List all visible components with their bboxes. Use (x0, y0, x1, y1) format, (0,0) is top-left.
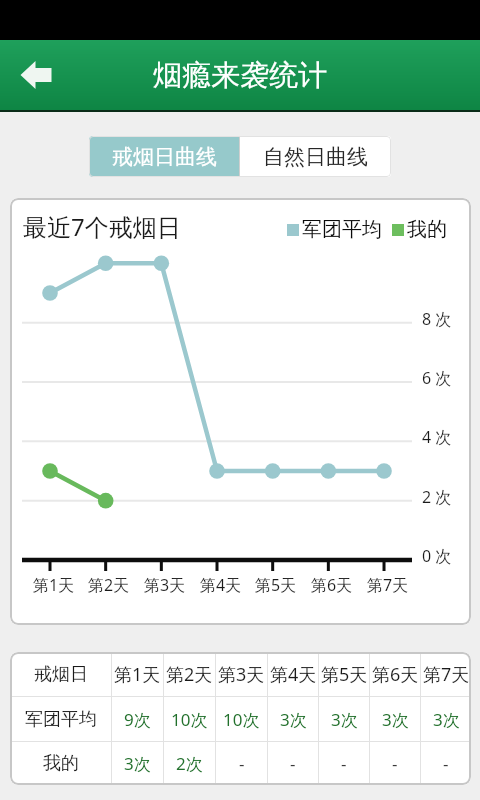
staticText: 自然日曲线 (263, 144, 368, 170)
staticText: 第7天 (423, 662, 470, 687)
staticText: 第6天 (372, 662, 419, 687)
button[interactable]: 戒烟日曲线 (89, 136, 239, 177)
staticText: 我的 (43, 752, 79, 775)
staticText: 第5天 (321, 662, 368, 687)
staticText: 第6天 (311, 574, 353, 596)
staticText: 戒烟日曲线 (112, 144, 217, 170)
staticText: 军团平均 (302, 217, 382, 242)
staticText: - (290, 752, 296, 775)
staticText: 第1天 (33, 574, 75, 596)
staticText: 第4天 (270, 662, 317, 687)
staticText: 8 次 (422, 308, 452, 330)
staticText: 0 次 (422, 545, 452, 567)
staticText: 最近7个戒烟日 (23, 210, 181, 243)
button[interactable]: 自然日曲线 (240, 136, 391, 177)
staticText: 第3天 (218, 662, 265, 687)
button[interactable]: Back (11, 50, 61, 100)
staticText: 10次 (171, 708, 208, 731)
staticText: 我的 (407, 217, 447, 242)
staticText: 烟瘾来袭统计 (153, 57, 327, 94)
staticText: 第7天 (367, 574, 409, 596)
staticText: 第2天 (166, 662, 213, 687)
staticText: 第3天 (144, 574, 186, 596)
staticText: 2 次 (422, 486, 452, 508)
staticText: 2次 (176, 752, 203, 775)
staticText: 3次 (433, 708, 460, 731)
staticText: 6 次 (422, 367, 452, 389)
staticText: 第5天 (255, 574, 297, 596)
staticText: 4 次 (422, 426, 452, 448)
staticText: 军团平均 (25, 708, 97, 731)
staticText: 3次 (331, 708, 358, 731)
staticText: - (239, 752, 245, 775)
staticText: - (341, 752, 347, 775)
staticText: 戒烟日 (34, 663, 88, 686)
staticText: - (443, 752, 449, 775)
staticText: 第4天 (200, 574, 242, 596)
staticText: 9次 (124, 708, 151, 731)
staticText: 3次 (280, 708, 307, 731)
staticText: 10次 (223, 708, 260, 731)
staticText: 3次 (382, 708, 409, 731)
staticText: 3次 (124, 752, 151, 775)
staticText: - (392, 752, 398, 775)
staticText: 第2天 (88, 574, 130, 596)
staticText: 第1天 (114, 662, 161, 687)
